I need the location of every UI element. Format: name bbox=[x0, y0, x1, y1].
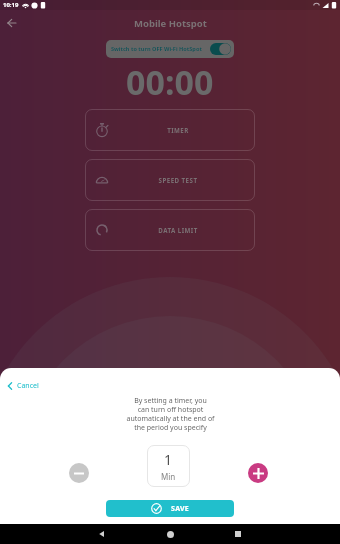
button[interactable]: 1 bbox=[147, 445, 190, 487]
button[interactable]: Increase bbox=[248, 463, 268, 483]
staticText: Switch to turn OFF Wi-Fi HotSpot bbox=[111, 45, 202, 53]
button[interactable]: SAVE bbox=[106, 500, 234, 517]
staticText: SPEED TEST bbox=[101, 176, 255, 184]
staticText: DATA LIMIT bbox=[101, 226, 255, 234]
staticText: By setting a timer, you can turn off hot… bbox=[126, 396, 215, 432]
button[interactable]: Back bbox=[1, 12, 23, 34]
staticText: 00:00 bbox=[126, 59, 214, 105]
button[interactable]: Recent apps bbox=[218, 524, 258, 544]
button[interactable]: Back bbox=[82, 524, 122, 544]
staticText: Cancel bbox=[17, 381, 39, 391]
staticText: 1 bbox=[164, 450, 173, 469]
staticText: 10:19 bbox=[3, 1, 19, 9]
button[interactable]: Switch to turn OFF Wi-Fi HotSpot bbox=[106, 40, 234, 58]
staticText: Mobile Hotspot bbox=[134, 17, 207, 30]
button[interactable]: Home bbox=[150, 524, 190, 544]
button[interactable]: Cancel bbox=[3, 378, 42, 394]
button[interactable]: SPEED TEST bbox=[85, 159, 255, 201]
staticText: TIMER bbox=[101, 126, 255, 134]
button[interactable]: Decrease bbox=[69, 463, 89, 483]
staticText: SAVE bbox=[171, 504, 190, 514]
button[interactable]: DATA LIMIT bbox=[85, 209, 255, 251]
staticText: Min bbox=[161, 471, 176, 482]
button[interactable]: TIMER bbox=[85, 109, 255, 151]
